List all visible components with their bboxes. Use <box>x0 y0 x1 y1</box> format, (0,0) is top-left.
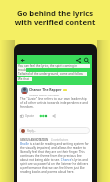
staticText: Reply... <box>27 129 36 133</box>
button[interactable]: We that <box>17 77 32 81</box>
button[interactable]: Reply... <box>19 127 90 134</box>
staticText: Tailwind of the underground, come and fo… <box>18 72 83 76</box>
button[interactable]: Tailwind of the underground, come and fo… <box>17 72 87 76</box>
staticText: The "Lizzie" line refers to our own lead… <box>20 97 90 109</box>
staticText: Verified Genius Annotator <box>29 93 60 96</box>
button[interactable]: You can feel the lyrics, the spirit comi… <box>17 64 90 68</box>
staticText: Go behind the lyrics with verified conte… <box>0 8 110 27</box>
button[interactable]: Upvote <box>20 114 24 118</box>
button[interactable]: trouble <box>17 68 26 72</box>
button[interactable]: Search <box>83 57 90 64</box>
staticText: You can feel the lyrics, the spirit comi… <box>18 64 78 68</box>
staticText: trouble <box>18 68 26 72</box>
button[interactable]: Share <box>75 57 82 64</box>
staticText: 4 contributors <box>51 138 69 142</box>
button[interactable]: Back <box>19 57 26 64</box>
staticText: GENIUS ANNOTATION <box>20 138 49 142</box>
staticText: We that <box>18 77 29 81</box>
button[interactable]: Share annotation <box>52 114 56 118</box>
staticText: Upvote <box>25 114 35 118</box>
staticText: Chance The Rapper <box>29 87 62 92</box>
staticText: Braille is a tactile reading and writing… <box>20 142 90 174</box>
